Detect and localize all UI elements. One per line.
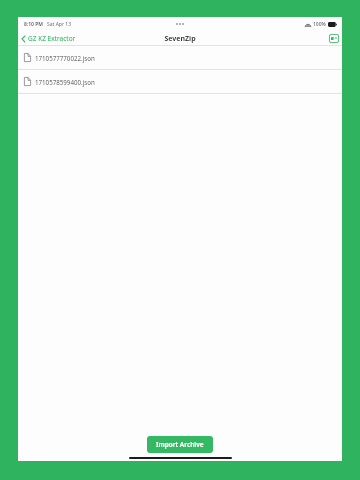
staticText: 1710578599400.json [35,78,95,86]
button[interactable]: 1710578599400.json [18,70,342,93]
button[interactable]: 1710577770022.json [18,46,342,69]
staticText: 1710577770022.json [35,54,95,62]
button[interactable]: Import Archive [147,436,213,453]
staticText: 8:10 PM [24,21,43,28]
staticText: Sat Apr 13 [47,21,72,28]
button[interactable]: Save archive [324,32,342,45]
button[interactable]: GZ KZ Extractor [18,32,82,45]
staticText: Import Archive [156,440,204,449]
staticText: 100% [313,21,326,28]
staticText: SevenZip [164,34,196,44]
staticText: GZ KZ Extractor [28,34,76,43]
